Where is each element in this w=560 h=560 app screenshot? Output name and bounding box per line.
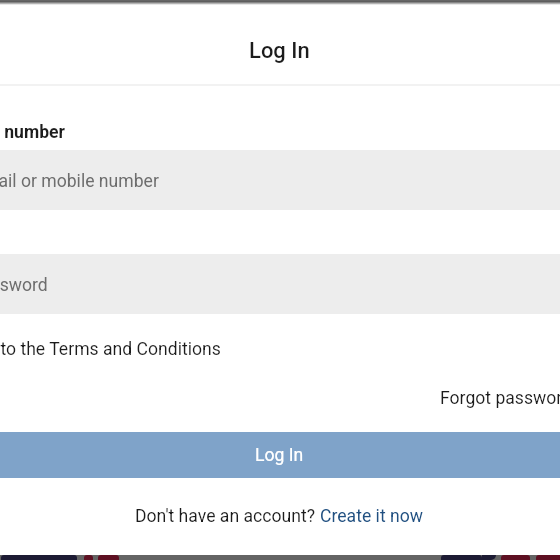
button[interactable]: I agree to the Terms and Conditions: [0, 339, 343, 360]
button[interactable]: Forgot password?: [440, 388, 560, 409]
button[interactable]: Sign in with Apple: [501, 555, 530, 560]
staticText: Email or mobile number: [0, 171, 159, 192]
staticText: Password: [0, 275, 48, 296]
staticText: I agree to the Terms and Conditions: [0, 339, 221, 360]
staticText: Forgot password?: [440, 388, 560, 409]
staticText: Log In: [255, 445, 304, 466]
button[interactable]: Sign in with Google: [98, 555, 119, 560]
staticText: Don't have an account?: [135, 506, 320, 527]
button[interactable]: Email or mobile number: [0, 150, 560, 210]
button[interactable]: Password: [0, 254, 560, 314]
button[interactable]: Log In: [0, 432, 560, 478]
button[interactable]: Create it now: [320, 506, 423, 527]
staticText: Email or mobile number: [0, 122, 66, 143]
button[interactable]: Log In: [249, 38, 310, 64]
button[interactable]: Sign in with Twitter: [441, 555, 482, 560]
button[interactable]: Sign in with Facebook: [1, 555, 77, 560]
